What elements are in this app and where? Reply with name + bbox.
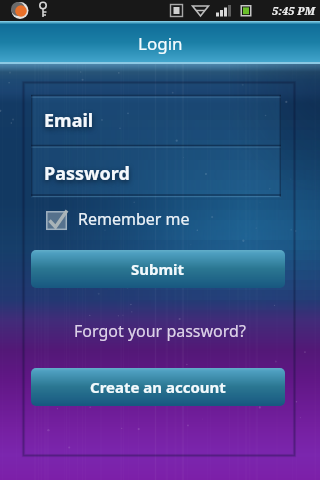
button[interactable]: Email <box>31 95 281 145</box>
staticText: 5:45 PM <box>272 3 316 18</box>
button[interactable]: Forgot your password? <box>68 318 252 344</box>
staticText: Remember me <box>78 208 190 230</box>
button[interactable]: Remember me <box>46 209 190 231</box>
staticText: Login <box>138 32 183 55</box>
staticText: Submit <box>131 259 185 279</box>
staticText: Password <box>44 161 130 186</box>
staticText: Create an account <box>90 377 226 397</box>
button[interactable]: Create an account <box>31 368 285 406</box>
button[interactable]: Submit <box>31 250 285 288</box>
staticText: Email <box>44 108 94 133</box>
button[interactable]: Password <box>31 145 281 197</box>
